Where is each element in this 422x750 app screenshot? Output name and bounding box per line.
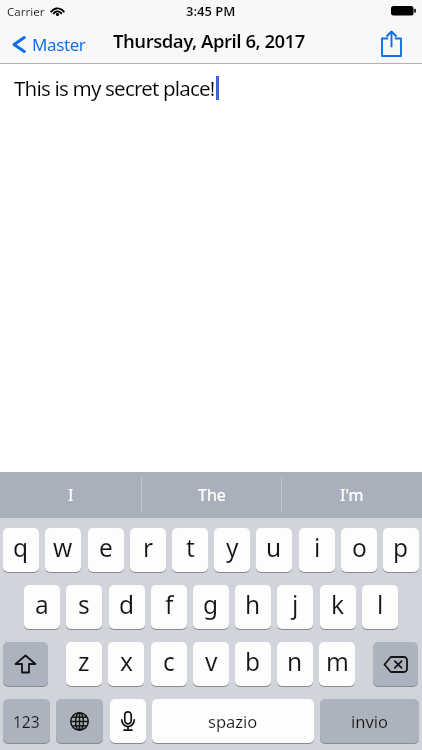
staticText: Master	[32, 33, 86, 56]
staticText: q	[13, 531, 29, 564]
staticText: spazio	[208, 710, 258, 732]
button[interactable]: i	[299, 528, 335, 572]
staticText: l	[377, 588, 384, 621]
staticText: e	[99, 531, 113, 564]
staticText: 3:45 PM	[186, 2, 236, 20]
button[interactable]: z	[66, 642, 102, 686]
button[interactable]: t	[172, 528, 208, 572]
button[interactable]: d	[109, 585, 145, 629]
staticText: Thursday, April 6, 2017	[113, 28, 305, 53]
staticText: The	[198, 484, 226, 506]
button[interactable]: I	[0, 472, 141, 518]
button[interactable]	[3, 642, 48, 686]
button[interactable]: invio	[320, 699, 419, 743]
button[interactable]	[110, 699, 146, 743]
staticText: f	[165, 588, 174, 621]
button[interactable]: v	[193, 642, 229, 686]
button[interactable]: u	[256, 528, 292, 572]
staticText: d	[119, 588, 135, 621]
button[interactable]: e	[88, 528, 124, 572]
button[interactable]: m	[319, 642, 355, 686]
staticText: z	[78, 645, 90, 678]
button[interactable]	[56, 699, 103, 743]
staticText: x	[120, 645, 133, 678]
staticText: o	[352, 531, 367, 564]
staticText: r	[143, 531, 154, 564]
staticText: p	[393, 531, 409, 564]
staticText: I'm	[340, 484, 364, 506]
button[interactable]: I'm	[281, 472, 422, 518]
staticText: w	[53, 531, 73, 564]
button[interactable]: s	[66, 585, 102, 629]
button[interactable]: k	[320, 585, 356, 629]
staticText: y	[226, 531, 239, 564]
staticText: s	[78, 588, 90, 621]
staticText: b	[245, 645, 261, 678]
button[interactable]: l	[362, 585, 398, 629]
staticText: Carrier	[7, 4, 45, 20]
staticText: a	[35, 588, 49, 621]
button[interactable]: r	[130, 528, 166, 572]
staticText: k	[331, 588, 345, 621]
button[interactable]: b	[235, 642, 271, 686]
button[interactable]: h	[235, 585, 271, 629]
button[interactable]: j	[277, 585, 313, 629]
staticText: n	[287, 645, 303, 678]
button[interactable]: p	[383, 528, 419, 572]
staticText: i	[314, 531, 321, 564]
staticText: u	[266, 531, 282, 564]
button[interactable]: q	[3, 528, 39, 572]
button[interactable]: The	[141, 472, 282, 518]
button[interactable]: o	[341, 528, 377, 572]
staticText: h	[245, 588, 261, 621]
staticText: g	[203, 588, 219, 621]
button[interactable]: spazio	[152, 699, 314, 743]
staticText: j	[292, 588, 299, 621]
staticText: t	[186, 531, 195, 564]
button[interactable]: f	[151, 585, 187, 629]
staticText: c	[163, 645, 175, 678]
staticText: m	[326, 645, 349, 678]
staticText: 123	[13, 711, 40, 732]
button[interactable]	[373, 642, 418, 686]
button[interactable]: g	[193, 585, 229, 629]
button[interactable]: n	[277, 642, 313, 686]
button[interactable]: 123	[3, 699, 50, 743]
button[interactable]: y	[214, 528, 250, 572]
staticText: invio	[351, 710, 389, 732]
staticText: v	[205, 645, 218, 678]
button[interactable]: w	[45, 528, 81, 572]
button[interactable]: c	[151, 642, 187, 686]
staticText: I	[68, 484, 74, 506]
button[interactable]: x	[108, 642, 144, 686]
button[interactable]	[375, 26, 408, 60]
button[interactable]: Master	[12, 25, 86, 63]
button[interactable]: a	[24, 585, 60, 629]
staticText: This is my secret place!	[14, 74, 215, 102]
